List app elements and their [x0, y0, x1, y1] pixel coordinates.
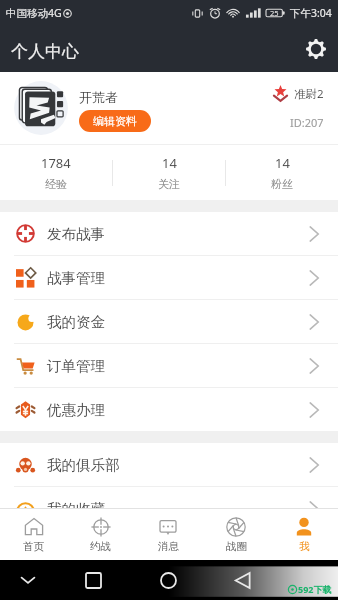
staticText: ID:207 — [290, 115, 324, 130]
staticText: 订单管理 — [47, 357, 105, 375]
staticText: 中国移动4G — [6, 6, 62, 20]
button[interactable]: 1784 — [0, 145, 112, 200]
staticText: 关注 — [158, 177, 180, 191]
button[interactable]: 战事管理 — [0, 256, 338, 299]
staticText: 消息 — [158, 540, 179, 553]
button[interactable]: 战圈 — [202, 509, 270, 560]
other: Hide keyboard — [20, 572, 36, 588]
button[interactable]: 约战 — [67, 509, 134, 560]
staticText: 首页 — [23, 540, 44, 553]
staticText: 战圈 — [226, 540, 247, 553]
staticText: 我的俱乐部 — [47, 456, 120, 474]
button[interactable]: 我的资金 — [0, 300, 338, 343]
staticText: 592下载 — [298, 583, 332, 595]
button[interactable]: 我 — [270, 509, 338, 560]
button[interactable]: 14 — [226, 145, 338, 200]
button[interactable]: 优惠办理 — [0, 388, 338, 431]
staticText: 优惠办理 — [47, 401, 105, 419]
staticText: 粉丝 — [271, 177, 293, 191]
staticText: 25 — [270, 8, 279, 18]
staticText: 战事管理 — [47, 269, 105, 287]
other: Home — [160, 572, 177, 589]
staticText: 约战 — [90, 540, 111, 553]
staticText: 准尉2 — [294, 86, 324, 102]
staticText: 下午3:04 — [290, 6, 332, 20]
staticText: 个人中心 — [11, 41, 79, 62]
button[interactable]: 消息 — [134, 509, 202, 560]
button[interactable]: 我的收藏 — [0, 487, 338, 530]
staticText: 开荒者 — [79, 89, 118, 105]
staticText: 发布战事 — [47, 225, 105, 243]
staticText: 14 — [162, 154, 177, 172]
staticText: 我的收藏 — [47, 500, 105, 518]
button[interactable]: 发布战事 — [0, 212, 338, 255]
staticText: 经验 — [45, 177, 67, 191]
staticText: 我的资金 — [47, 313, 105, 331]
other: Back — [234, 572, 251, 589]
button[interactable]: Settings — [302, 35, 330, 63]
button[interactable]: 14 — [113, 145, 225, 200]
staticText: 我 — [299, 540, 310, 553]
button[interactable]: 编辑资料 — [79, 110, 151, 132]
button[interactable]: 首页 — [0, 509, 67, 560]
staticText: 14 — [275, 154, 290, 172]
other: Recent apps — [85, 572, 102, 589]
button[interactable]: 订单管理 — [0, 344, 338, 387]
button[interactable]: 我的俱乐部 — [0, 443, 338, 486]
staticText: 1784 — [41, 154, 71, 172]
staticText: 编辑资料 — [93, 114, 137, 128]
